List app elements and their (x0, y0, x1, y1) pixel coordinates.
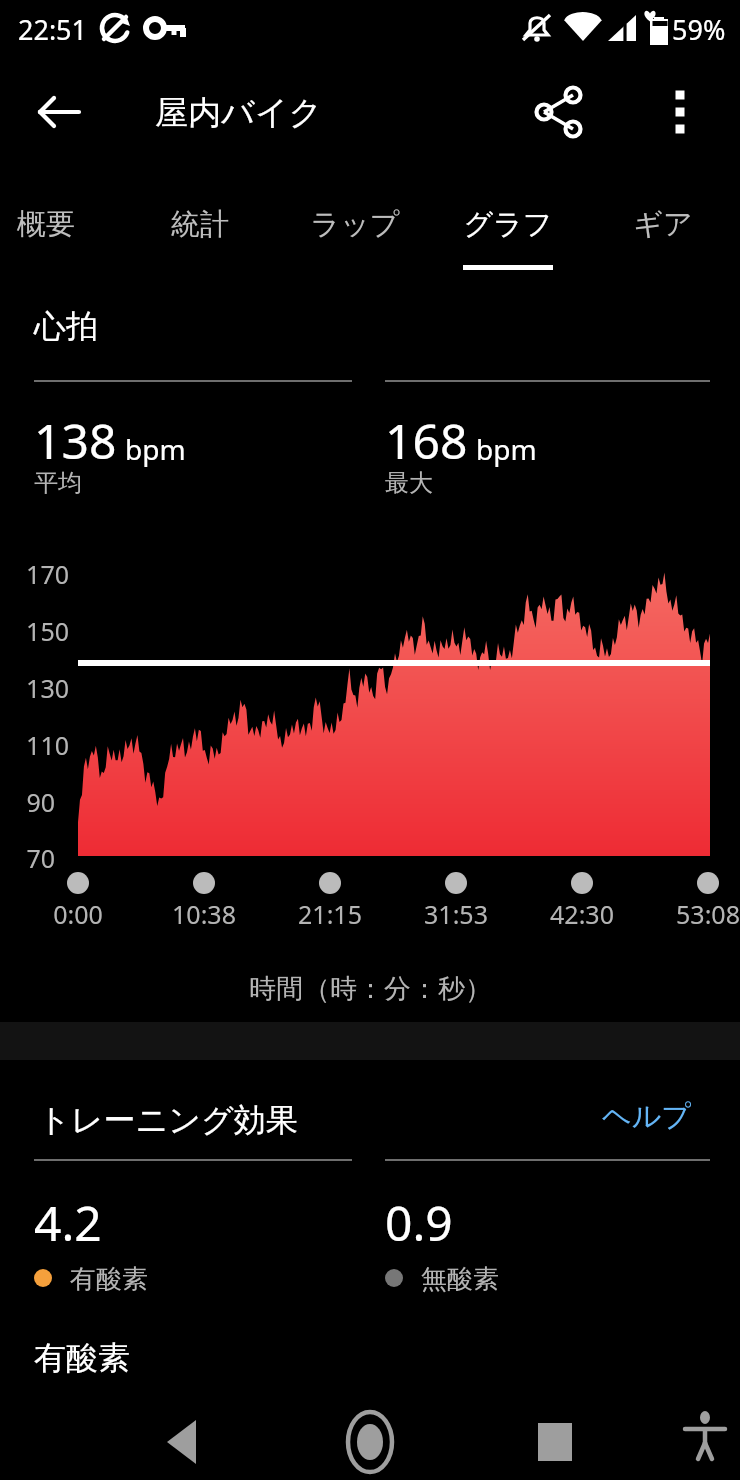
staticText: 統計 (171, 206, 229, 243)
staticText: 平均 (34, 468, 82, 498)
button[interactable]: 概要 (0, 168, 112, 272)
staticText: 10:38 (172, 897, 236, 931)
staticText: 168 (385, 408, 468, 473)
staticText: グラフ (463, 206, 553, 243)
staticText: 有酸素 (70, 1263, 148, 1296)
staticText: 最大 (385, 468, 433, 498)
staticText: 170 (26, 557, 69, 591)
button[interactable]: Back (138, 1397, 228, 1480)
staticText: 有酸素 (34, 1338, 130, 1378)
staticText: 150 (26, 614, 69, 648)
staticText: ギア (633, 206, 693, 243)
staticText: 21:15 (298, 897, 362, 931)
button[interactable]: ギア (597, 168, 729, 272)
button[interactable]: Back (22, 74, 98, 150)
staticText: 70 (26, 841, 55, 875)
staticText: 59% (672, 11, 726, 48)
button[interactable]: Accessibility (665, 1397, 740, 1477)
staticText: bpm (125, 430, 186, 468)
staticText: 無酸素 (421, 1263, 499, 1296)
staticText: 53:08 (676, 897, 740, 931)
staticText: 0.9 (385, 1190, 453, 1255)
staticText: 138 (34, 408, 117, 473)
button[interactable]: Home (325, 1397, 415, 1480)
staticText: 時間（時：分：秒） (249, 972, 492, 1006)
staticText: bpm (476, 430, 537, 468)
button[interactable]: 統計 (134, 168, 266, 272)
staticText: 31:53 (424, 897, 488, 931)
staticText: 42:30 (550, 897, 614, 931)
staticText: トレーニング効果 (38, 1100, 298, 1140)
staticText: 22:51 (18, 11, 88, 48)
button[interactable]: Share (522, 74, 598, 150)
staticText: ラップ (310, 206, 400, 243)
staticText: 心拍 (34, 306, 98, 346)
button[interactable]: ヘルプ (602, 1098, 692, 1135)
button[interactable]: Recent apps (510, 1397, 600, 1480)
staticText: 4.2 (34, 1190, 102, 1255)
staticText: 130 (26, 671, 69, 705)
staticText: 概要 (17, 206, 75, 243)
button[interactable]: ラップ (289, 168, 421, 272)
staticText: 0:00 (53, 897, 103, 931)
staticText: 屋内バイク (155, 92, 323, 134)
button[interactable]: グラフ (442, 168, 574, 272)
staticText: 110 (26, 728, 69, 762)
staticText: 90 (26, 785, 55, 819)
button[interactable]: More options (642, 74, 718, 150)
staticText: ヘルプ (602, 1098, 692, 1135)
